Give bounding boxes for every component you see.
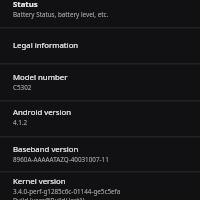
button[interactable]: Model number: [0, 64, 200, 100]
staticText: Legal information: [13, 40, 79, 51]
staticText: Kernel version: [13, 176, 66, 187]
staticText: C5302: [13, 83, 32, 92]
staticText: Baseband version: [13, 144, 79, 155]
staticText: Status: [13, 0, 38, 10]
staticText: 4.1.2: [13, 118, 28, 127]
button[interactable]: Legal information: [0, 28, 200, 63]
staticText: 3.4.0-perf-g1285c6c-01144-ge5c5efa Build…: [13, 187, 121, 200]
button[interactable]: Kernel version: [0, 172, 200, 200]
staticText: Android version: [13, 107, 72, 118]
button[interactable]: Status: [0, 0, 200, 27]
staticText: Battery Status, battery level, etc.: [13, 10, 109, 19]
button[interactable]: Baseband version: [0, 137, 200, 171]
button[interactable]: Android version: [0, 101, 200, 136]
staticText: Model number: [13, 72, 68, 83]
staticText: 8960A-AAAAATAZQ-40031007-11: [13, 155, 109, 164]
